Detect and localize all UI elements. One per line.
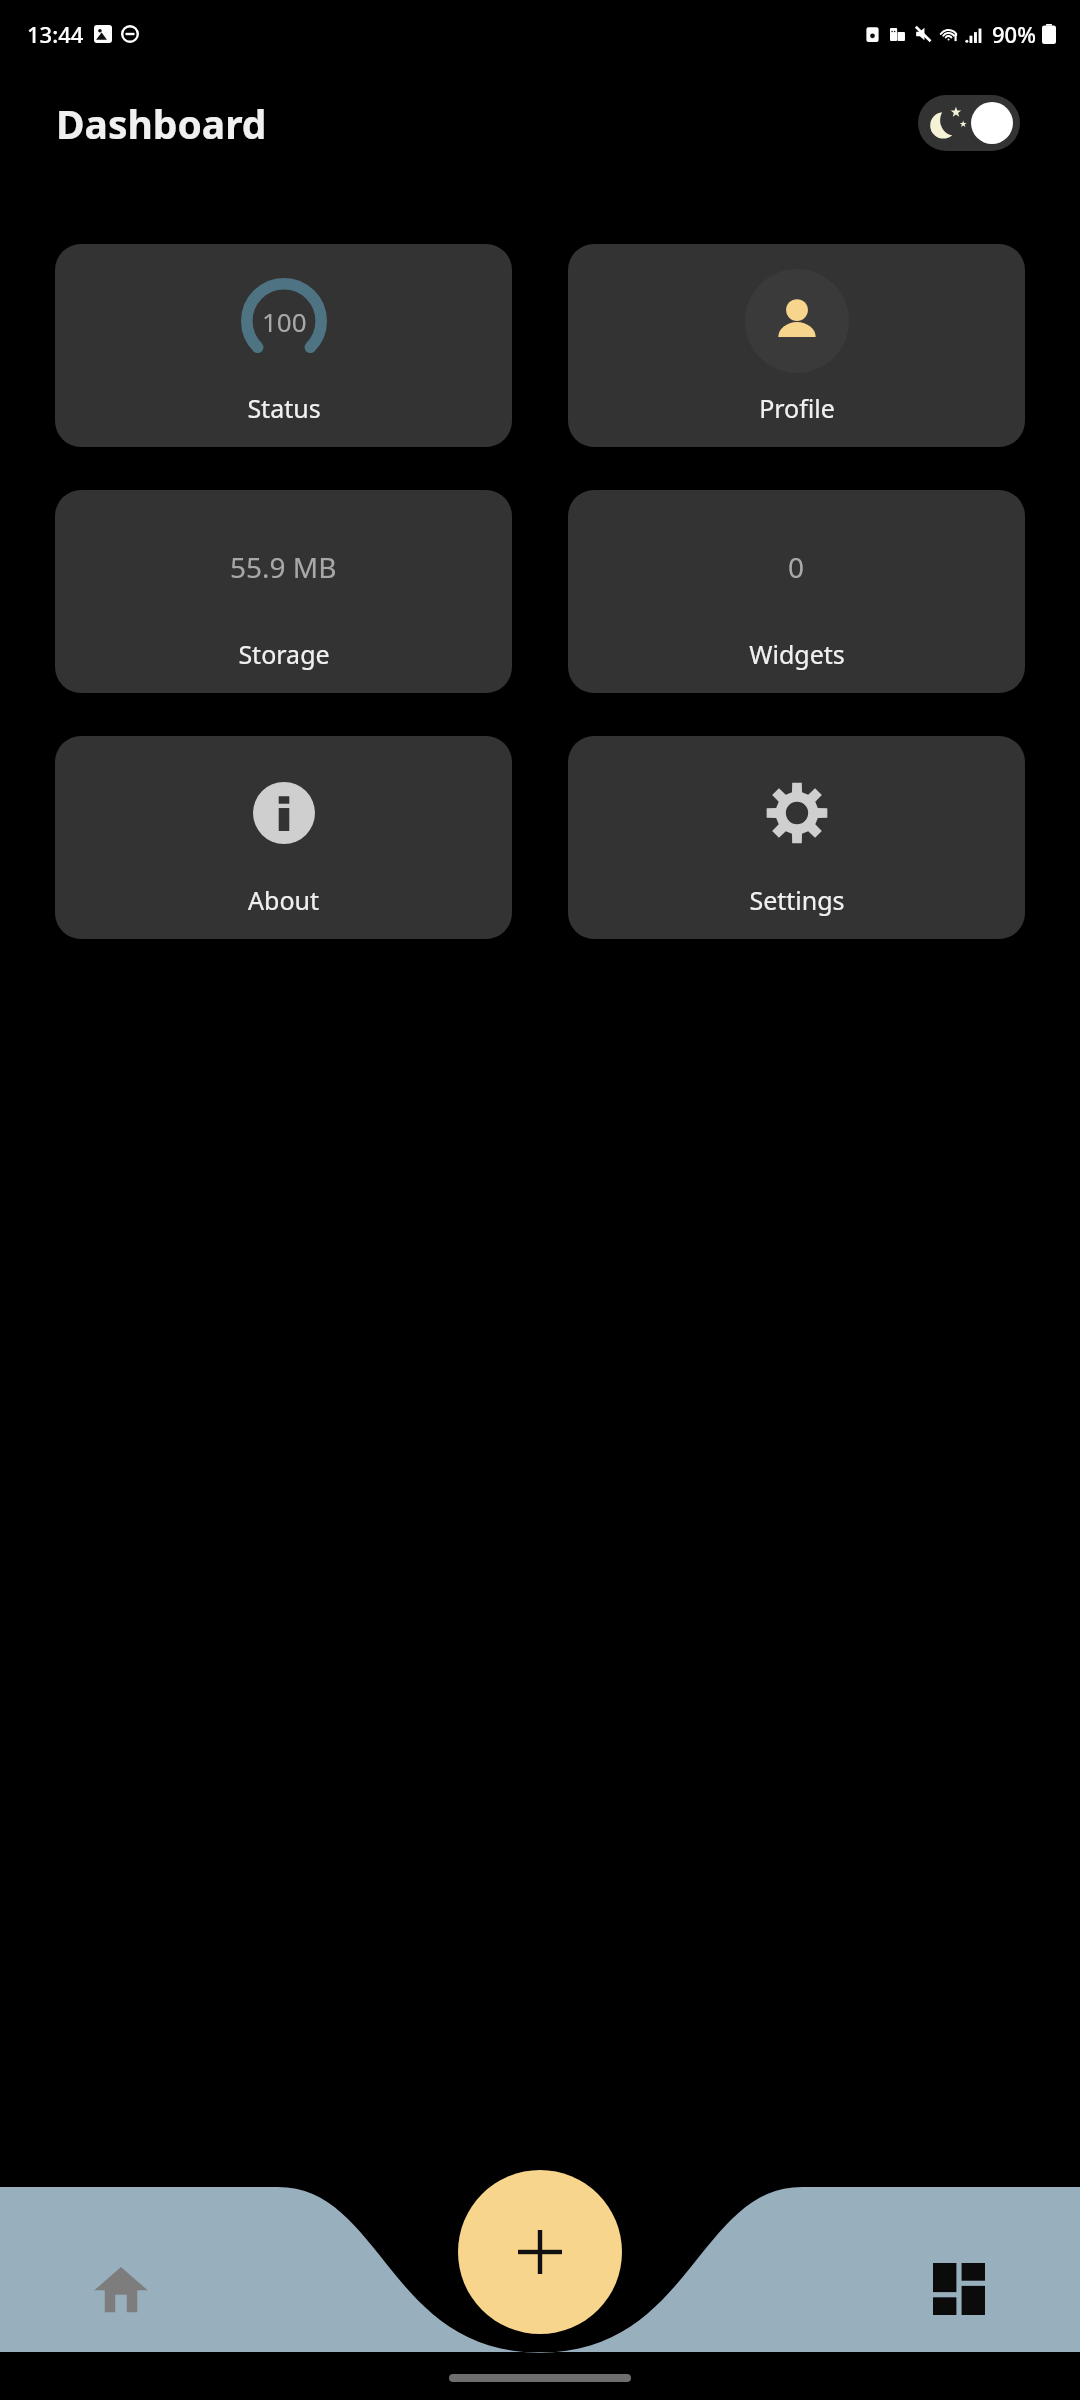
button[interactable]: Profile <box>568 244 1025 447</box>
staticText: 55.9 MB <box>230 548 337 586</box>
button[interactable]: 55.9 MB <box>55 490 512 693</box>
button[interactable]: 0 <box>568 490 1025 693</box>
staticText: Dashboard <box>56 97 267 150</box>
button[interactable]: Toggle dark mode <box>918 95 1020 151</box>
staticText: Profile <box>759 391 835 425</box>
button[interactable]: Home <box>82 2250 160 2328</box>
button[interactable]: Add <box>458 2170 622 2334</box>
staticText: Settings <box>749 883 845 917</box>
staticText: 100 <box>262 304 307 339</box>
staticText: 13:44 <box>27 19 84 49</box>
button[interactable]: About <box>55 736 512 939</box>
staticText: About <box>248 883 319 917</box>
button[interactable]: Settings <box>568 736 1025 939</box>
staticText: Status <box>247 391 321 425</box>
staticText: Storage <box>238 637 330 671</box>
button[interactable]: 100 <box>55 244 512 447</box>
button[interactable]: Widgets <box>920 2250 998 2328</box>
staticText: 90% <box>992 19 1036 49</box>
staticText: Widgets <box>749 637 845 671</box>
staticText: 0 <box>788 548 805 586</box>
